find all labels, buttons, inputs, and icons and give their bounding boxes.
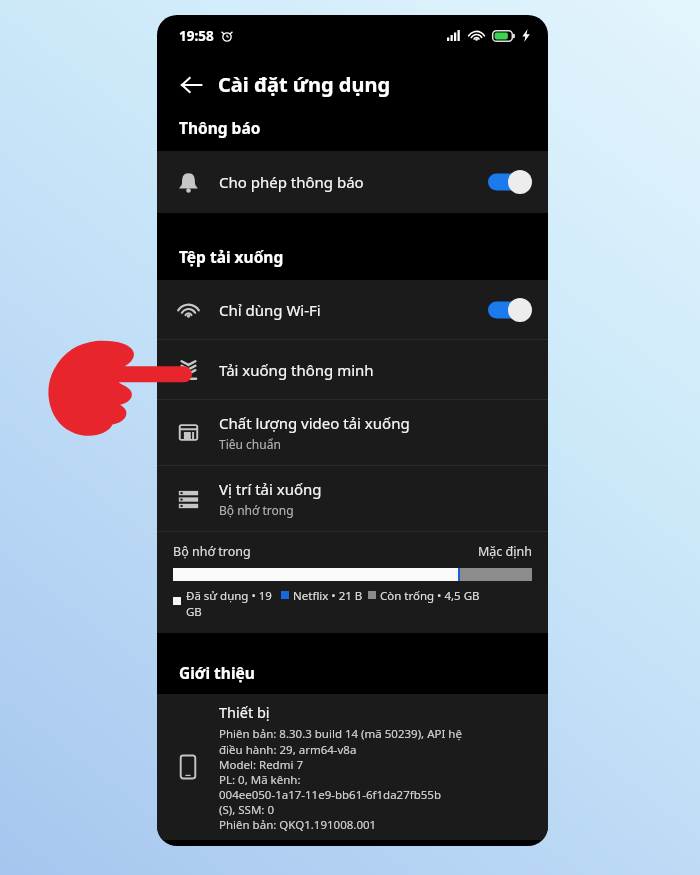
staticText: Còn trống • 4,5 GB: [380, 588, 480, 604]
staticText: Tiêu chuẩn: [219, 436, 281, 452]
button[interactable]: Cho phép thông báo: [157, 151, 548, 213]
staticText: Tải xuống thông minh: [219, 360, 374, 380]
button[interactable]: Chỉ dùng Wi-Fi: [157, 280, 548, 339]
staticText: Netflix • 21 B: [293, 588, 363, 604]
button[interactable]: Toggle: [488, 298, 532, 322]
staticText: Thông báo: [179, 117, 261, 138]
button[interactable]: Thiết bị: [157, 694, 548, 840]
staticText: Giới thiệu: [179, 662, 255, 683]
button[interactable]: Tải xuống thông minh: [157, 340, 548, 399]
staticText: Chỉ dùng Wi-Fi: [219, 300, 321, 320]
staticText: Cài đặt ứng dụng: [218, 71, 391, 98]
staticText: Vị trí tải xuống: [219, 479, 322, 499]
staticText: Phiên bản: 8.30.3 build 14 (mã 50239), A…: [219, 726, 462, 832]
staticText: 19:58: [179, 27, 214, 45]
button[interactable]: Back: [169, 63, 213, 107]
staticText: Thiết bị: [219, 702, 270, 722]
button[interactable]: Vị trí tải xuống: [157, 466, 548, 531]
staticText: Mặc định: [478, 543, 532, 560]
staticText: Chất lượng video tải xuống: [219, 413, 410, 433]
staticText: Bộ nhớ trong: [173, 543, 251, 560]
staticText: Bộ nhớ trong: [219, 502, 294, 518]
button[interactable]: Chất lượng video tải xuống: [157, 400, 548, 465]
staticText: Tệp tải xuống: [179, 246, 284, 267]
button[interactable]: Toggle: [488, 170, 532, 194]
staticText: Đã sử dụng • 19 GB: [186, 588, 272, 620]
staticText: Cho phép thông báo: [219, 172, 364, 192]
